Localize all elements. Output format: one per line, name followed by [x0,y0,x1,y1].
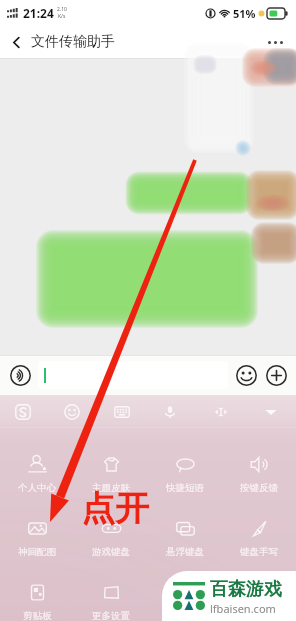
button[interactable]: 个人中心 [0,428,74,492]
staticText: lfbaisen.com [210,601,276,616]
staticText: 主题皮肤 [92,482,130,492]
button[interactable]: 快捷短语 [148,428,222,492]
button[interactable]: Emoji [233,362,259,388]
button[interactable]: Voice [157,399,183,425]
staticText: K/s [58,13,66,20]
button[interactable]: 游戏键盘 [74,492,148,556]
staticText: 键盘手写 [240,546,278,556]
staticText: 2.10 [57,6,67,13]
button[interactable]: 主题皮肤 [74,428,148,492]
button[interactable]: Adjust keyboard size [208,399,234,425]
button[interactable]: Hide keyboard [258,399,284,425]
button[interactable]: Sogou input [10,399,36,425]
button[interactable]: 剪贴板 [0,556,74,620]
staticText: 文件传输助手 [31,33,115,51]
staticText: 剪贴板 [23,610,52,620]
button[interactable]: 神回配图 [0,492,74,556]
staticText: 51% [233,6,256,21]
button[interactable]: 更多设置 [74,556,148,620]
button[interactable]: Keyboard [109,399,135,425]
button[interactable]: 按键反馈 [222,428,296,492]
button[interactable]: Emoji keyboard [59,399,85,425]
button[interactable]: More options [263,362,289,388]
button[interactable]: More [262,29,288,55]
staticText: 21:24 [23,5,54,21]
staticText: 更多设置 [92,610,130,620]
staticText: 悬浮键盘 [166,546,204,556]
button[interactable]: 键盘手写 [222,492,296,556]
staticText: 点开 [81,487,149,530]
button[interactable] [38,361,228,389]
button[interactable]: 悬浮键盘 [148,492,222,556]
staticText: 按键反馈 [240,482,278,492]
staticText: 神回配图 [18,546,56,556]
staticText: 百森游戏 [210,578,282,601]
staticText: 个人中心 [18,482,56,492]
staticText: 快捷短语 [166,482,204,492]
staticText: 游戏键盘 [92,546,130,556]
button[interactable]: Back [4,30,28,54]
button[interactable]: Voice input [7,362,33,388]
